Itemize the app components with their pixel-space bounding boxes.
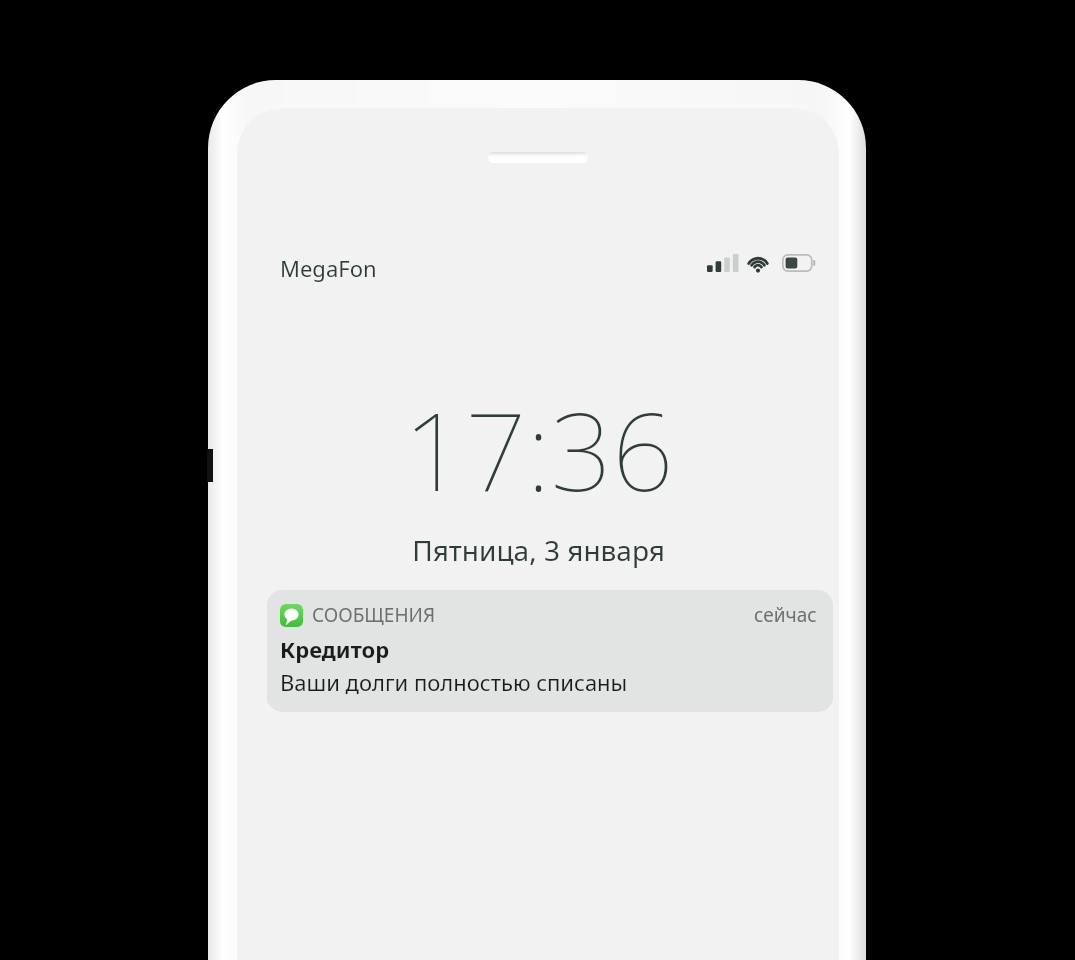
- staticText: Кредитор: [280, 634, 390, 664]
- button[interactable]: Messages: [267, 590, 833, 712]
- staticText: 17:36: [403, 376, 674, 523]
- staticText: Ваши долги полностью списаны: [280, 667, 628, 697]
- other: Messages: [280, 604, 303, 627]
- staticText: СООБЩЕНИЯ: [312, 602, 436, 628]
- staticText: MegaFon: [280, 253, 377, 283]
- staticText: Пятница, 3 января: [412, 531, 665, 569]
- staticText: сейчас: [754, 602, 817, 628]
